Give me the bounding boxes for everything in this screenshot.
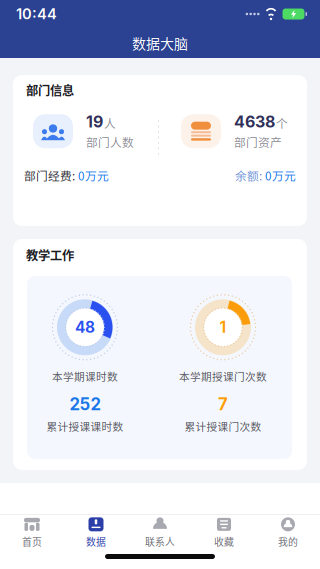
button[interactable]: 联系人 [128, 517, 192, 549]
staticText: 4638 [234, 112, 275, 131]
staticText: 7 [218, 394, 228, 414]
staticText: 本学期课时数 [52, 368, 118, 384]
staticText: 1 [219, 318, 226, 337]
staticText: 累计授课门次数 [184, 418, 261, 434]
staticText: 19 [86, 112, 103, 131]
staticText: 首页 [22, 534, 42, 549]
button[interactable]: 收藏 [192, 517, 256, 549]
staticText: 部门经费: [24, 167, 75, 184]
staticText: 累计授课课时数 [46, 418, 123, 434]
staticText: 252 [69, 394, 100, 414]
staticText: 余额: [235, 167, 262, 184]
staticText: 48 [75, 318, 95, 337]
staticText: 部门信息 [26, 81, 74, 99]
staticText: 数据大脑 [132, 33, 188, 53]
staticText: 0万元 [262, 167, 296, 184]
staticText: 数据 [86, 534, 106, 549]
button[interactable]: 数据 [64, 517, 128, 549]
staticText: 部门资产 [234, 133, 282, 150]
button[interactable]: 我的 [256, 517, 320, 549]
staticText: 教学工作 [26, 246, 74, 264]
staticText: 0万元 [75, 167, 109, 184]
button[interactable]: 首页 [0, 517, 64, 549]
staticText: 我的 [278, 534, 298, 549]
staticText: 收藏 [214, 534, 234, 549]
staticText: 10:44 [16, 5, 57, 23]
staticText: 部门人数 [86, 133, 134, 150]
staticText: 本学期授课门次数 [179, 368, 267, 384]
staticText: 人 [104, 114, 116, 131]
staticText: 联系人 [145, 534, 175, 549]
staticText: 个 [276, 114, 288, 131]
